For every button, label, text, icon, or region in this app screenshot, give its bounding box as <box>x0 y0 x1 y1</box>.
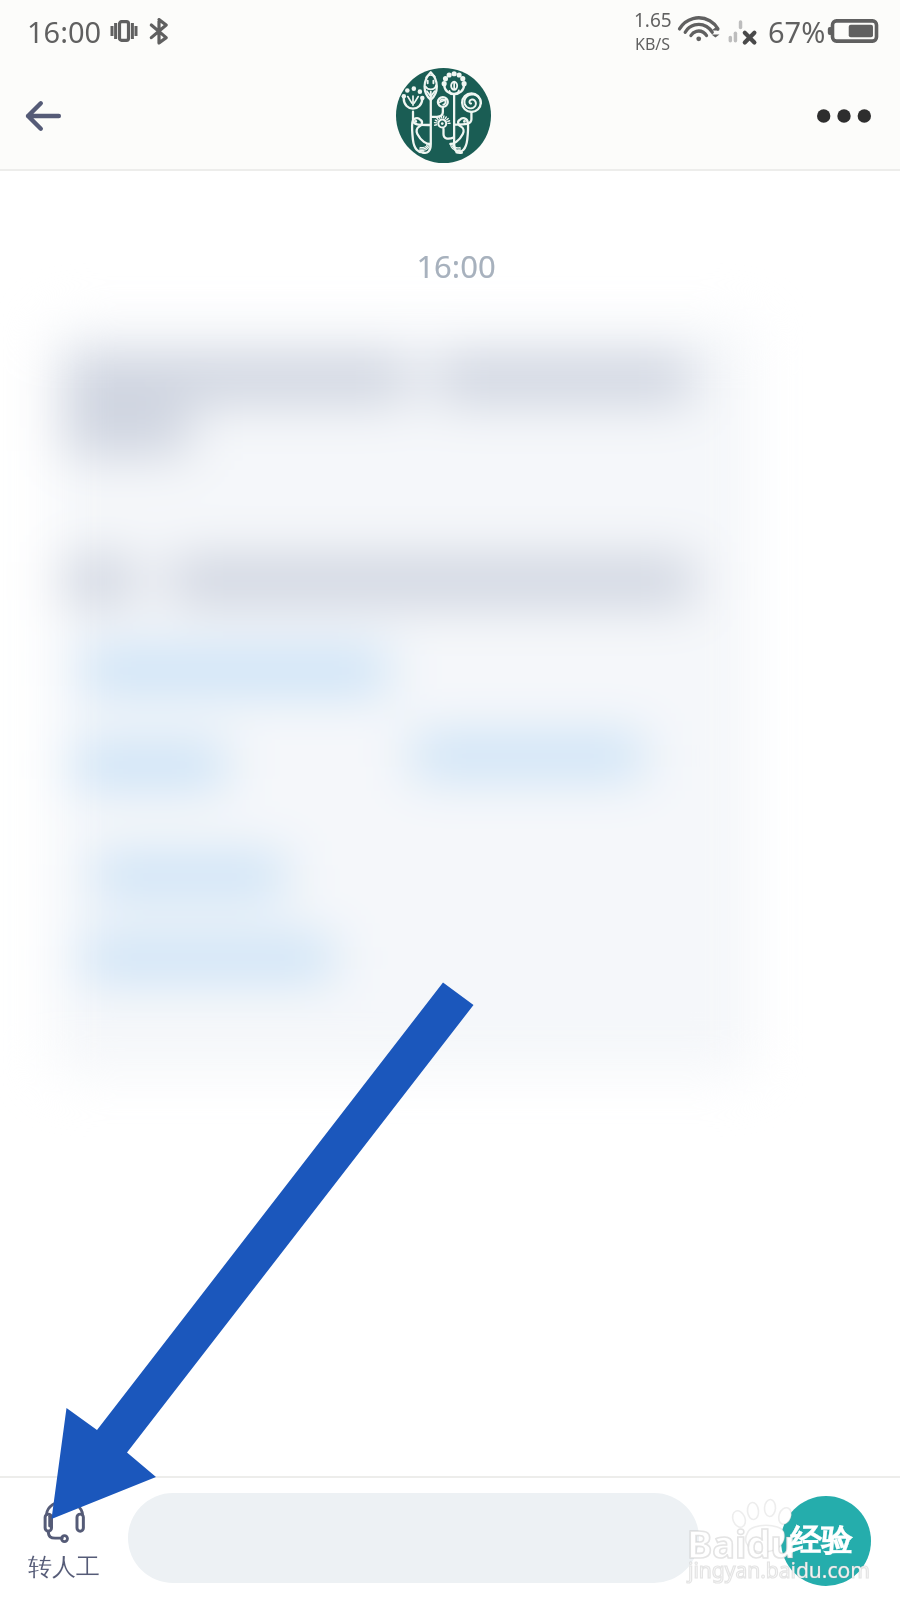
staticText: 67% <box>768 12 826 51</box>
staticText: 16:00 <box>27 12 102 51</box>
button[interactable]: Back <box>8 81 78 151</box>
staticText: jingyan.baidu.com <box>688 1556 870 1585</box>
staticText: Baidu <box>687 1517 796 1569</box>
button[interactable] <box>128 1493 699 1583</box>
staticText: 转人工 <box>28 1552 100 1582</box>
staticText: KB/S <box>635 33 671 55</box>
staticText: 经验 <box>790 1521 852 1560</box>
staticText: 16:00 <box>6 245 900 287</box>
staticText: 1.65 <box>634 7 672 33</box>
button[interactable]: 转人工 <box>0 1478 128 1600</box>
staticText: Baidu <box>687 1517 796 1569</box>
staticText: jingyan.baidu.com <box>688 1556 870 1585</box>
button[interactable]: More options <box>804 76 884 156</box>
